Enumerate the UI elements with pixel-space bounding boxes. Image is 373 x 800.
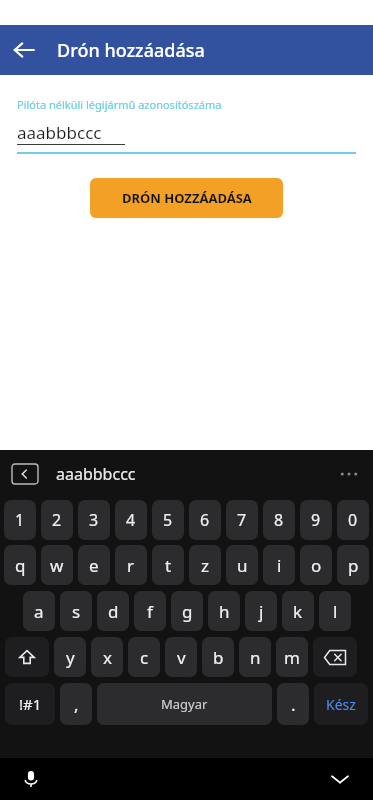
staticText: z — [201, 554, 209, 577]
button[interactable]: Hide keyboard — [323, 762, 357, 796]
staticText: i — [277, 554, 282, 577]
staticText: w — [50, 554, 64, 577]
button[interactable]: 7 — [226, 500, 258, 540]
staticText: 6 — [200, 509, 210, 531]
staticText: 9 — [311, 509, 321, 531]
staticText: e — [89, 554, 99, 577]
staticText: m — [284, 646, 300, 669]
staticText: u — [237, 554, 248, 577]
button[interactable]: 9 — [300, 500, 332, 540]
button[interactable]: DRÓN HOZZÁADÁSA — [90, 178, 283, 218]
button[interactable]: , — [60, 683, 92, 725]
button[interactable]: t — [152, 545, 184, 585]
button[interactable]: 3 — [78, 500, 110, 540]
button[interactable]: c — [128, 637, 160, 677]
button[interactable]: 2 — [41, 500, 73, 540]
button[interactable]: y — [54, 637, 86, 677]
button[interactable]: b — [202, 637, 234, 677]
staticText: k — [293, 600, 303, 623]
button[interactable]: f — [134, 591, 166, 631]
staticText: y — [66, 646, 75, 669]
staticText: o — [311, 554, 322, 577]
staticText: j — [259, 600, 264, 623]
button[interactable]: g — [171, 591, 203, 631]
staticText: 5 — [163, 509, 173, 531]
button[interactable]: r — [115, 545, 147, 585]
staticText: Kész — [326, 695, 356, 714]
button[interactable]: p — [337, 545, 369, 585]
staticText: 0 — [348, 509, 358, 531]
staticText: 1 — [15, 509, 25, 531]
staticText: q — [15, 554, 26, 577]
staticText: aaabbbccc — [56, 463, 136, 485]
button[interactable]: z — [189, 545, 221, 585]
staticText: , — [74, 693, 79, 716]
staticText: c — [140, 646, 149, 669]
staticText: h — [219, 600, 230, 623]
button[interactable]: Shift — [5, 637, 49, 677]
staticText: !#1 — [19, 694, 42, 714]
staticText: s — [72, 600, 81, 623]
button[interactable]: n — [239, 637, 271, 677]
button[interactable]: j — [245, 591, 277, 631]
staticText: DRÓN HOZZÁADÁSA — [122, 189, 252, 207]
button[interactable]: w — [41, 545, 73, 585]
staticText: t — [165, 554, 172, 577]
staticText: aaabbbccc — [17, 121, 102, 144]
button[interactable]: i — [263, 545, 295, 585]
button[interactable]: aaabbbccc — [17, 121, 356, 154]
staticText: Drón hozzáadása — [57, 38, 205, 63]
staticText: v — [177, 646, 186, 669]
button[interactable]: x — [91, 637, 123, 677]
staticText: 3 — [89, 509, 99, 531]
button[interactable]: . — [277, 683, 309, 725]
button[interactable]: More options — [337, 462, 361, 486]
button[interactable]: k — [282, 591, 314, 631]
button[interactable]: 8 — [263, 500, 295, 540]
staticText: d — [108, 600, 119, 623]
button[interactable]: s — [60, 591, 92, 631]
staticText: 2 — [52, 509, 62, 531]
button[interactable]: Backspace — [313, 637, 357, 677]
button[interactable]: q — [4, 545, 36, 585]
staticText: Magyar — [161, 695, 208, 713]
button[interactable]: l — [319, 591, 351, 631]
staticText: r — [127, 554, 135, 577]
button[interactable]: m — [276, 637, 308, 677]
staticText: l — [333, 600, 338, 623]
button[interactable]: Back — [0, 26, 48, 74]
staticText: g — [182, 600, 193, 623]
button[interactable]: v — [165, 637, 197, 677]
button[interactable]: d — [97, 591, 129, 631]
button[interactable]: 0 — [337, 500, 369, 540]
button[interactable]: Voice input — [16, 764, 46, 794]
button[interactable]: Magyar — [97, 683, 272, 725]
button[interactable]: Previous — [12, 464, 38, 484]
button[interactable]: 4 — [115, 500, 147, 540]
button[interactable]: Kész — [314, 683, 368, 725]
staticText: 4 — [126, 509, 136, 531]
staticText: x — [103, 646, 112, 669]
staticText: a — [34, 600, 44, 623]
staticText: n — [250, 646, 261, 669]
button[interactable]: e — [78, 545, 110, 585]
staticText: 7 — [237, 509, 247, 531]
button[interactable]: 5 — [152, 500, 184, 540]
button[interactable]: 1 — [4, 500, 36, 540]
button[interactable]: o — [300, 545, 332, 585]
button[interactable]: a — [23, 591, 55, 631]
button[interactable]: h — [208, 591, 240, 631]
staticText: Pilóta nélküli légijármű azonosítószáma — [17, 97, 222, 112]
button[interactable]: !#1 — [5, 683, 55, 725]
button[interactable]: 6 — [189, 500, 221, 540]
staticText: 8 — [274, 509, 284, 531]
button[interactable]: u — [226, 545, 258, 585]
staticText: b — [213, 646, 224, 669]
staticText: p — [348, 554, 359, 577]
staticText: . — [291, 693, 296, 716]
staticText: f — [147, 600, 153, 623]
